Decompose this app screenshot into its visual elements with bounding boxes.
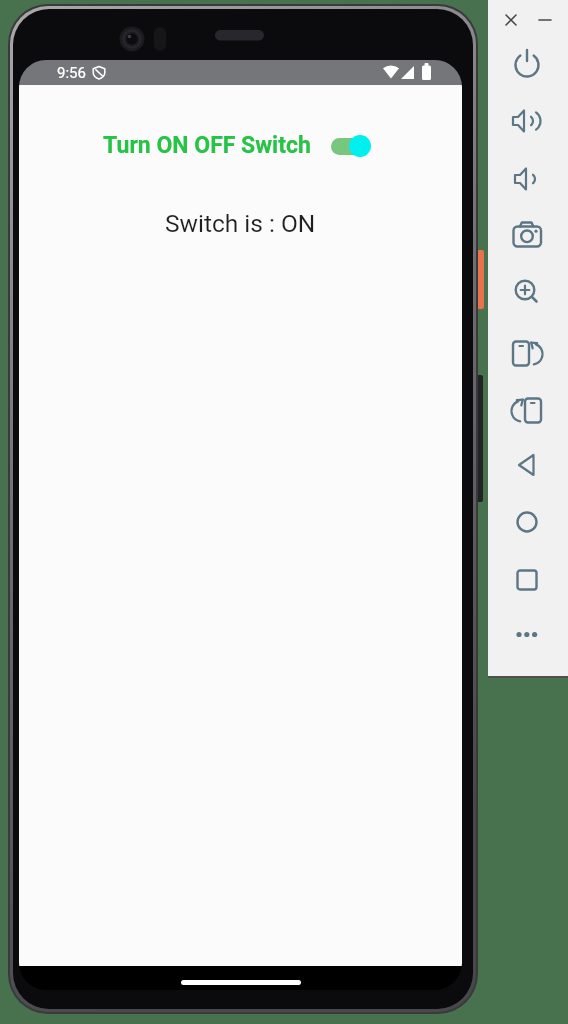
staticText: Turn ON OFF Switch bbox=[103, 132, 311, 159]
button[interactable] bbox=[511, 506, 543, 538]
button[interactable] bbox=[511, 105, 543, 137]
button[interactable] bbox=[511, 220, 543, 252]
button[interactable] bbox=[511, 277, 543, 309]
button[interactable] bbox=[511, 564, 543, 596]
staticText: Switch is : ON bbox=[165, 209, 316, 238]
button[interactable] bbox=[331, 133, 371, 159]
button[interactable] bbox=[511, 392, 543, 424]
button[interactable] bbox=[511, 163, 543, 195]
button[interactable] bbox=[511, 449, 543, 481]
button[interactable] bbox=[499, 8, 523, 32]
button[interactable] bbox=[511, 335, 543, 367]
button[interactable] bbox=[511, 48, 543, 80]
staticText: 9:56 bbox=[57, 64, 86, 82]
button[interactable] bbox=[511, 621, 543, 653]
button[interactable] bbox=[533, 8, 557, 32]
